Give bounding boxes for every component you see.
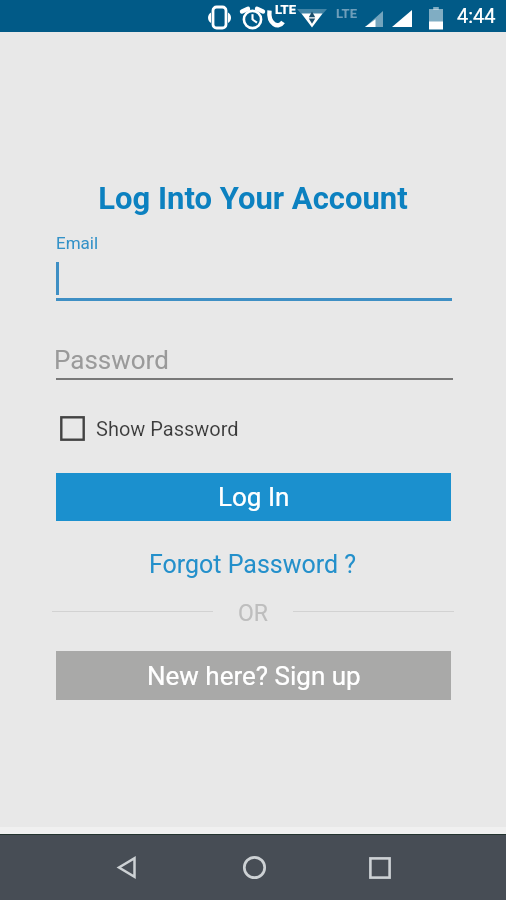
staticText: LTE xyxy=(336,6,357,21)
staticText: LTE xyxy=(275,2,296,17)
staticText: Log In xyxy=(218,482,290,512)
button[interactable]: New here? Sign up xyxy=(56,651,451,700)
button[interactable]: Log In xyxy=(56,473,451,521)
staticText: OR xyxy=(238,600,268,622)
staticText: 4:44 xyxy=(457,4,496,27)
staticText: New here? Sign up xyxy=(147,661,361,691)
staticText: Log Into Your Account xyxy=(0,180,506,216)
button[interactable]: Back xyxy=(71,835,183,900)
button[interactable]: Show Password xyxy=(56,410,239,446)
button[interactable]: Forgot Password ? xyxy=(0,546,506,582)
staticText: Forgot Password ? xyxy=(149,550,357,579)
button[interactable]: Recent apps xyxy=(324,835,436,900)
staticText: Password xyxy=(54,345,169,375)
staticText: Show Password xyxy=(96,417,239,440)
staticText: Email xyxy=(56,233,99,253)
button[interactable]: Home xyxy=(198,835,310,900)
